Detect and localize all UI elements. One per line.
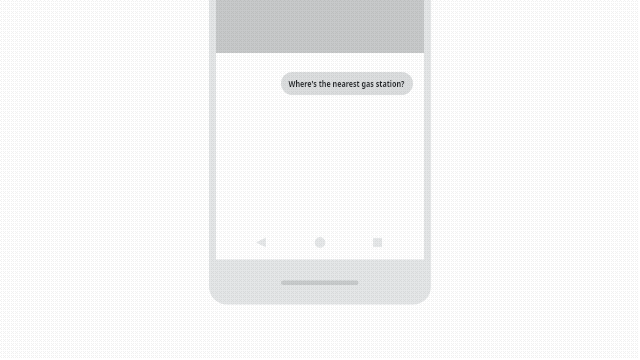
button[interactable]: Recent apps <box>367 231 389 253</box>
button[interactable] <box>281 72 413 95</box>
button[interactable]: Back <box>249 231 271 253</box>
button[interactable]: Home <box>309 231 331 253</box>
